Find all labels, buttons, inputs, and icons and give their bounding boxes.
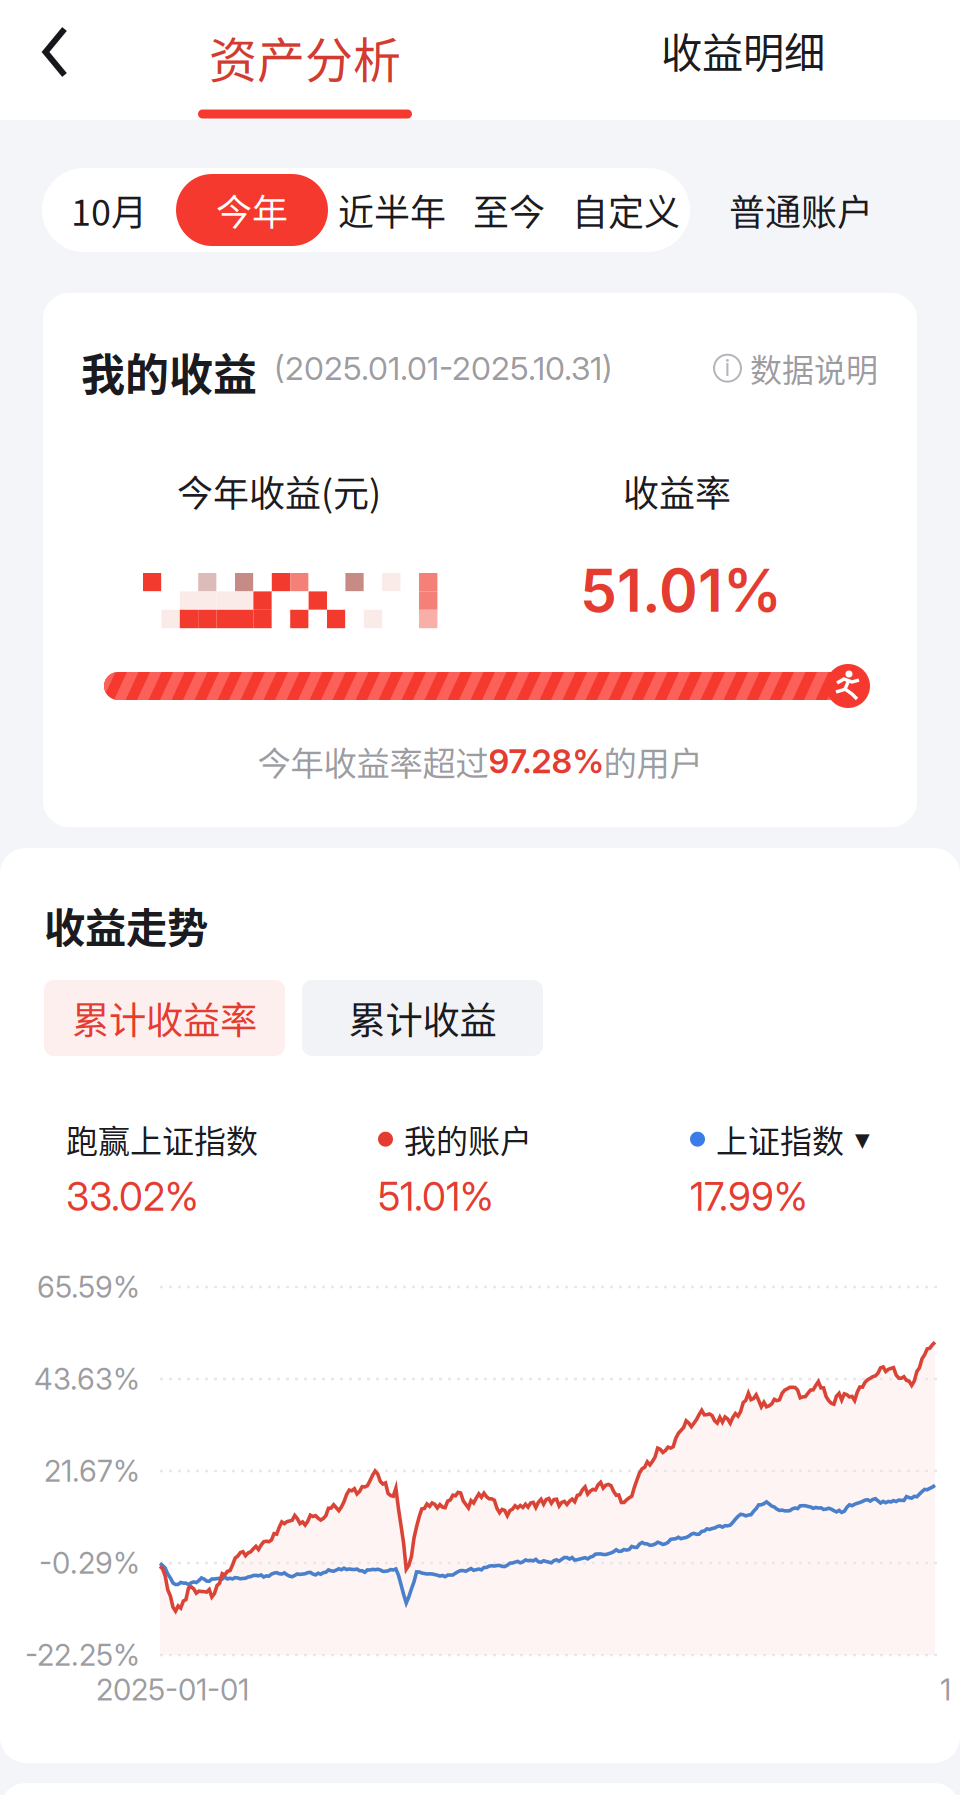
staticText: -0.29% bbox=[39, 1545, 140, 1581]
staticText: 1 bbox=[940, 1672, 951, 1707]
staticText: 资产分析 bbox=[209, 22, 401, 91]
staticText: 今年收益率超过 bbox=[257, 737, 488, 785]
button[interactable]: 普通账户 bbox=[710, 168, 892, 252]
staticText: 的用户 bbox=[603, 737, 702, 785]
button[interactable]: 10月 bbox=[42, 174, 176, 246]
staticText: 跑赢上证指数 bbox=[66, 1116, 258, 1162]
staticText: 累计收益率 bbox=[72, 991, 257, 1045]
staticText: 今年收益(元) bbox=[177, 465, 381, 517]
button[interactable]: Back bbox=[0, 0, 110, 104]
button[interactable]: 累计收益 bbox=[302, 980, 543, 1056]
staticText: 43.63% bbox=[34, 1361, 140, 1397]
button[interactable]: 资产分析 bbox=[175, 0, 435, 120]
staticText: 数据说明 bbox=[750, 345, 878, 391]
staticText: 我的收益 bbox=[81, 340, 257, 404]
staticText: 17.99% bbox=[690, 1173, 808, 1220]
staticText: 至今 bbox=[473, 184, 545, 236]
staticText: (2025.01.01-2025.10.31) bbox=[274, 349, 613, 388]
button[interactable]: 自定义 bbox=[562, 174, 690, 246]
button[interactable]: 上证指数 bbox=[690, 1116, 870, 1220]
staticText: 21.67% bbox=[44, 1453, 140, 1489]
staticText: 上证指数 bbox=[716, 1116, 844, 1162]
staticText: -22.25% bbox=[25, 1637, 140, 1673]
staticText: 97.28% bbox=[488, 741, 603, 781]
button[interactable]: i bbox=[713, 345, 878, 391]
staticText: 51.01% bbox=[580, 555, 782, 626]
button[interactable]: 今年 bbox=[176, 174, 328, 246]
staticText: 收益率 bbox=[623, 465, 731, 517]
staticText: 51.01% bbox=[378, 1173, 494, 1220]
button[interactable]: 至今 bbox=[456, 174, 562, 246]
staticText: 近半年 bbox=[338, 184, 446, 236]
staticText: 自定义 bbox=[572, 184, 680, 236]
staticText: 收益走势 bbox=[44, 895, 208, 955]
button[interactable]: 累计收益率 bbox=[44, 980, 285, 1056]
staticText: 33.02% bbox=[66, 1173, 199, 1220]
button[interactable]: 近半年 bbox=[328, 174, 456, 246]
staticText: 普通账户 bbox=[729, 184, 873, 236]
staticText: 2025-01-01 bbox=[96, 1672, 249, 1707]
staticText: 收益明细 bbox=[661, 20, 825, 80]
staticText: 今年 bbox=[216, 184, 288, 236]
staticText: ▾ bbox=[855, 1122, 870, 1156]
staticText: 10月 bbox=[71, 184, 147, 236]
staticText: 65.59% bbox=[37, 1269, 140, 1305]
staticText: i bbox=[724, 353, 730, 382]
staticText: 累计收益 bbox=[348, 991, 496, 1045]
staticText: 我的账户 bbox=[404, 1116, 532, 1162]
button[interactable]: 收益明细 bbox=[643, 0, 843, 100]
